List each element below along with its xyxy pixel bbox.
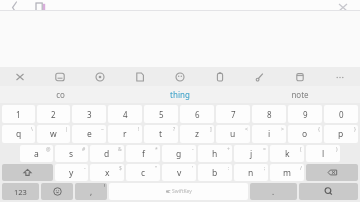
staticText: e bbox=[87, 128, 92, 140]
staticText: ' bbox=[192, 165, 194, 172]
staticText: ? bbox=[173, 126, 176, 133]
button[interactable]: o bbox=[288, 125, 322, 143]
button[interactable]: j bbox=[234, 145, 268, 162]
staticText: = bbox=[263, 146, 266, 153]
staticText: ! bbox=[138, 126, 140, 133]
button[interactable]: v bbox=[162, 164, 196, 181]
staticText: c bbox=[141, 167, 146, 179]
button[interactable]: Emoji bbox=[41, 183, 73, 200]
staticText: 6 bbox=[195, 109, 200, 120]
button[interactable]: f bbox=[126, 145, 160, 162]
button[interactable]: , bbox=[75, 183, 107, 200]
staticText: w bbox=[50, 128, 57, 140]
button[interactable]: 4 bbox=[108, 105, 142, 123]
button[interactable]: More bbox=[320, 67, 360, 86]
staticText: ] bbox=[210, 126, 212, 133]
staticText: 8 bbox=[267, 109, 272, 120]
staticText: + bbox=[227, 146, 230, 153]
staticText: SwiftKey bbox=[172, 188, 192, 195]
button[interactable]: note bbox=[240, 86, 360, 103]
button[interactable]: r bbox=[108, 125, 142, 143]
staticText: ; bbox=[264, 165, 266, 172]
staticText: @ bbox=[46, 146, 51, 153]
button[interactable]: Emoji bbox=[160, 67, 200, 86]
staticText: | bbox=[65, 126, 68, 133]
staticText: 5 bbox=[159, 109, 164, 120]
button[interactable]: k bbox=[270, 145, 304, 162]
button[interactable]: t bbox=[144, 125, 178, 143]
button[interactable]: 6 bbox=[180, 105, 214, 123]
staticText: 7 bbox=[231, 109, 236, 120]
button[interactable]: u bbox=[216, 125, 250, 143]
staticText: / bbox=[300, 165, 302, 172]
button[interactable]: Clipboard history bbox=[200, 67, 240, 86]
button[interactable]: Settings bbox=[80, 67, 120, 86]
button[interactable]: e bbox=[72, 125, 106, 143]
button[interactable]: g bbox=[162, 145, 196, 162]
staticText: 0 bbox=[339, 109, 344, 120]
button[interactable]: Note icon bbox=[32, 0, 50, 11]
staticText: p bbox=[338, 128, 344, 140]
button[interactable]: Backspace bbox=[306, 164, 358, 181]
staticText: 2 bbox=[51, 109, 56, 120]
staticText: 9 bbox=[303, 109, 308, 120]
staticText: & bbox=[118, 146, 122, 153]
button[interactable]: 9 bbox=[288, 105, 322, 123]
staticText: , bbox=[90, 186, 93, 197]
button[interactable]: Search bbox=[299, 183, 358, 200]
staticText: o bbox=[302, 128, 308, 140]
staticText: $ bbox=[119, 165, 122, 172]
button[interactable]: p bbox=[324, 125, 358, 143]
staticText: n bbox=[248, 167, 254, 179]
staticText: a bbox=[34, 148, 39, 160]
button[interactable]: Space bbox=[109, 183, 248, 200]
staticText: h bbox=[212, 148, 218, 160]
staticText: ( bbox=[300, 146, 302, 153]
button[interactable]: w bbox=[37, 125, 70, 143]
button[interactable]: Shift bbox=[2, 164, 53, 181]
button[interactable]: Close bbox=[334, 0, 352, 11]
staticText: k bbox=[285, 148, 290, 160]
button[interactable]: 2 bbox=[37, 105, 70, 123]
button[interactable]: 1 bbox=[2, 105, 35, 123]
button[interactable]: y bbox=[55, 164, 88, 181]
staticText: ~ bbox=[101, 126, 104, 133]
button[interactable]: Clipboard bbox=[40, 67, 80, 86]
button[interactable]: co bbox=[0, 86, 120, 103]
button[interactable]: i bbox=[252, 125, 286, 143]
staticText: b bbox=[212, 167, 218, 179]
staticText: 123 bbox=[14, 187, 27, 197]
button[interactable]: 3 bbox=[72, 105, 106, 123]
staticText: > bbox=[281, 126, 284, 133]
button[interactable]: l bbox=[306, 145, 340, 162]
staticText: 1 bbox=[16, 109, 21, 120]
button[interactable]: 8 bbox=[252, 105, 286, 123]
staticText: \ bbox=[31, 126, 33, 133]
button[interactable]: m bbox=[270, 164, 304, 181]
button[interactable]: Stickers bbox=[120, 67, 160, 86]
button[interactable]: 123 bbox=[2, 183, 39, 200]
button[interactable]: Calendar bbox=[280, 67, 320, 86]
staticText: z bbox=[195, 128, 199, 140]
button[interactable]: q bbox=[2, 125, 35, 143]
button[interactable]: b bbox=[198, 164, 232, 181]
button[interactable]: Themes bbox=[240, 67, 280, 86]
button[interactable]: a bbox=[20, 145, 53, 162]
staticText: # bbox=[82, 146, 86, 153]
button[interactable]: Close toolbar bbox=[0, 67, 40, 86]
staticText: { bbox=[318, 126, 320, 133]
staticText: - bbox=[84, 165, 86, 172]
button[interactable]: 7 bbox=[216, 105, 250, 123]
button[interactable]: h bbox=[198, 145, 232, 162]
button[interactable]: s bbox=[55, 145, 88, 162]
button[interactable]: 0 bbox=[324, 105, 358, 123]
button[interactable]: c bbox=[126, 164, 160, 181]
button[interactable]: z bbox=[180, 125, 214, 143]
button[interactable]: d bbox=[90, 145, 124, 162]
button[interactable]: thing bbox=[120, 86, 240, 103]
button[interactable]: Back bbox=[6, 0, 24, 11]
button[interactable]: 5 bbox=[144, 105, 178, 123]
button[interactable]: x bbox=[90, 164, 124, 181]
button[interactable]: n bbox=[234, 164, 268, 181]
